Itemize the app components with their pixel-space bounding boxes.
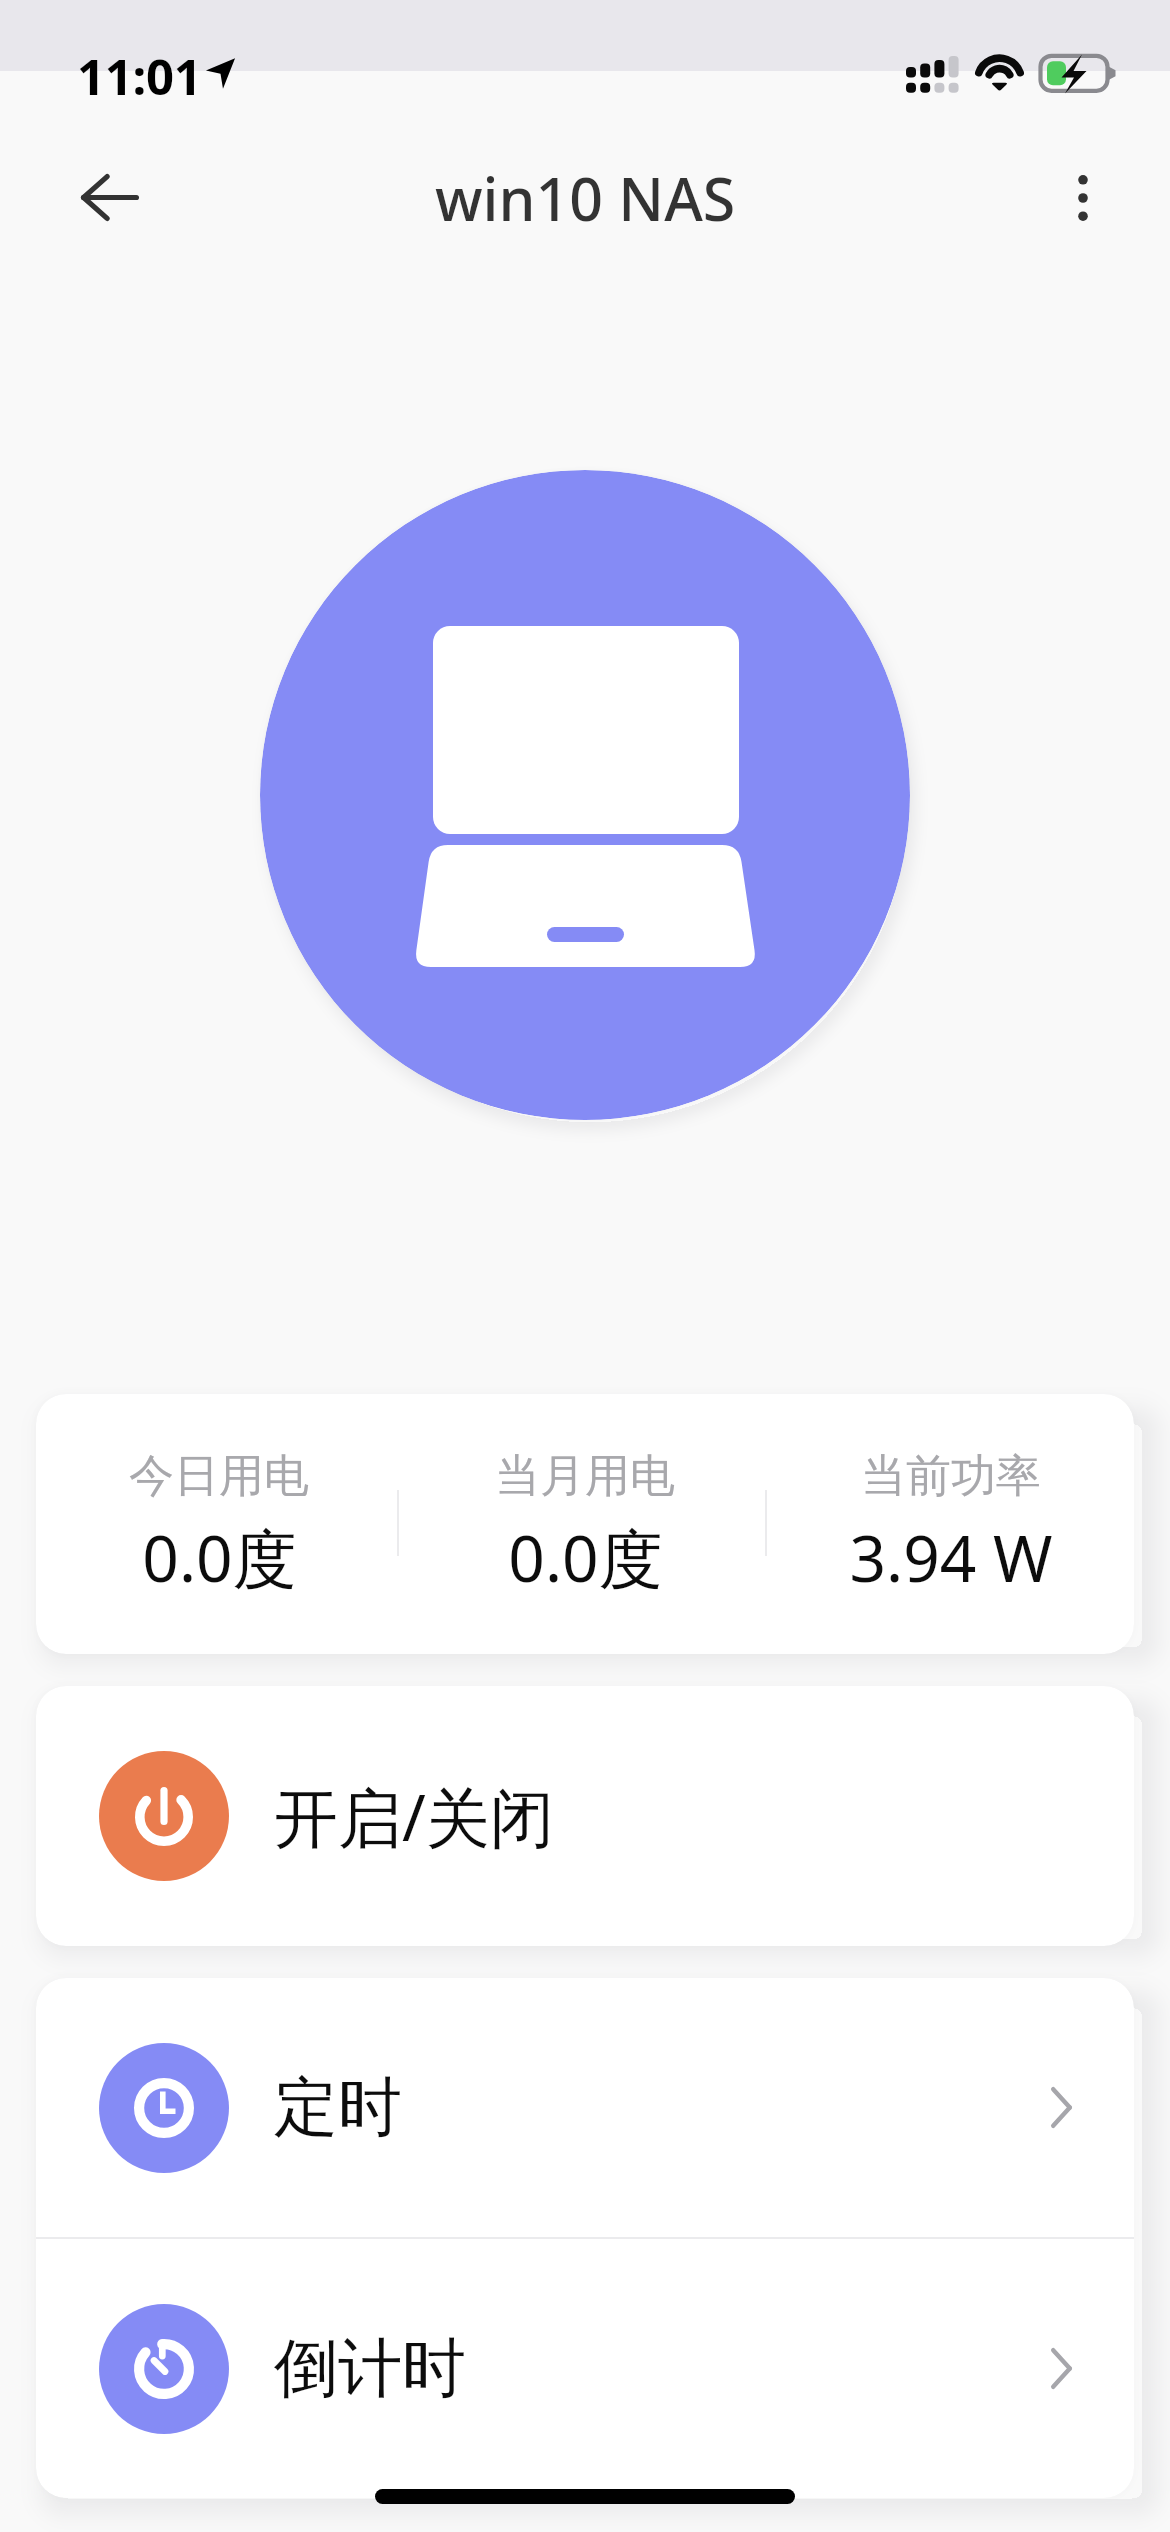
staticText: 今日用电 xyxy=(129,1448,309,1505)
staticText: 11:01 xyxy=(77,43,202,102)
staticText: 0.0度 xyxy=(508,1514,663,1601)
staticText: 开启/关闭 xyxy=(274,1773,554,1860)
staticText: 当前功率 xyxy=(861,1448,1041,1505)
button[interactable]: More options xyxy=(1037,152,1129,244)
staticText: 0.0度 xyxy=(142,1514,297,1601)
staticText: 定时 xyxy=(274,2067,402,2148)
staticText: win10 NAS xyxy=(435,158,736,238)
staticText: 3.94 W xyxy=(849,1514,1053,1601)
button[interactable]: Back xyxy=(42,130,178,265)
staticText: 当月用电 xyxy=(495,1448,675,1505)
button[interactable]: 开启/关闭 xyxy=(36,1686,1134,1946)
button[interactable]: 倒计时 xyxy=(36,2239,1134,2498)
staticText: 倒计时 xyxy=(274,2328,466,2409)
button[interactable]: 定时 xyxy=(36,1978,1134,2237)
button[interactable]: Device icon xyxy=(260,470,910,1120)
